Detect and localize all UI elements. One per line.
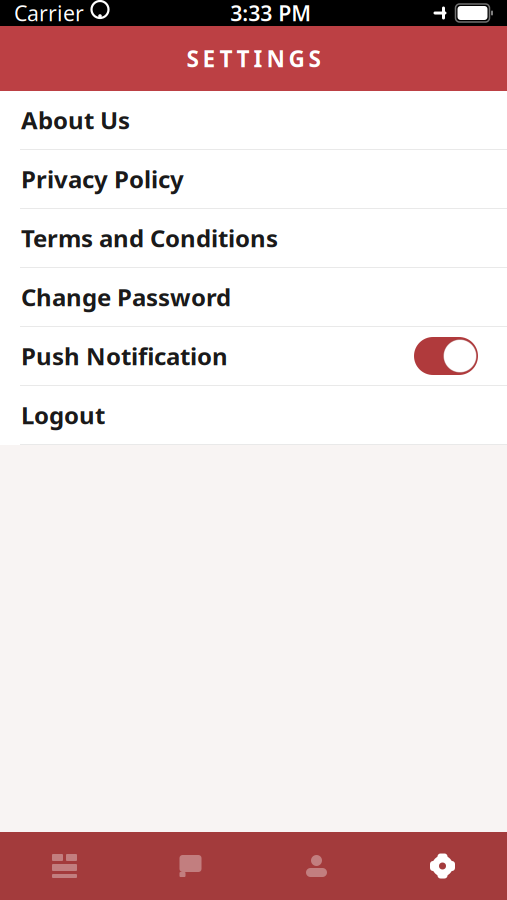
staticText: G: [288, 43, 304, 73]
staticText: Logout: [21, 399, 105, 431]
staticText: 3:33 PM: [230, 0, 311, 27]
button[interactable]: Terms and Conditions: [0, 209, 507, 268]
staticText: About Us: [21, 104, 130, 136]
button[interactable]: Settings: [379, 832, 505, 900]
button[interactable]: Push Notification toggle: [414, 337, 478, 375]
staticText: S: [186, 43, 198, 73]
staticText: Privacy Policy: [21, 163, 184, 195]
button[interactable]: Feed: [1, 832, 127, 900]
staticText: N: [266, 43, 284, 73]
staticText: Terms and Conditions: [21, 222, 278, 254]
staticText: Push Notification: [21, 340, 228, 372]
button[interactable]: About Us: [0, 91, 507, 150]
staticText: I: [253, 43, 262, 73]
button[interactable]: Privacy Policy: [0, 150, 507, 209]
staticText: Change Password: [21, 281, 231, 313]
staticText: S: [308, 43, 320, 73]
button[interactable]: Logout: [0, 386, 507, 445]
button[interactable]: Chat: [127, 832, 253, 900]
button[interactable]: Profile: [253, 832, 379, 900]
staticText: Carrier: [14, 0, 84, 27]
staticText: T: [219, 43, 232, 73]
staticText: T: [236, 43, 249, 73]
button[interactable]: Change Password: [0, 268, 507, 327]
staticText: E: [202, 43, 215, 73]
